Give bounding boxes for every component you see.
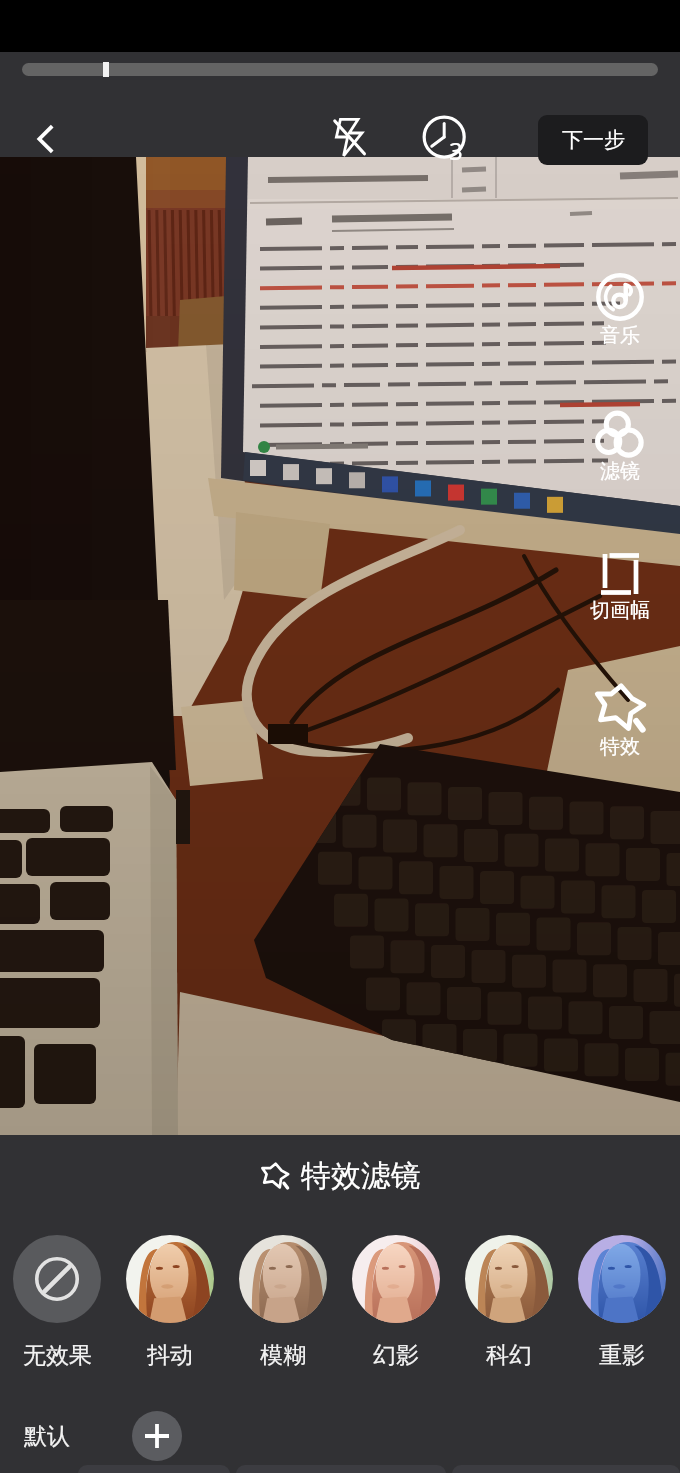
- staticText: 无效果: [23, 1341, 92, 1370]
- staticText: 3: [449, 134, 463, 167]
- staticText: 特效滤镜: [301, 1157, 421, 1195]
- staticText: 模糊: [260, 1341, 306, 1370]
- button[interactable]: Timer: [420, 116, 472, 168]
- staticText: 幻影: [373, 1341, 419, 1370]
- button[interactable]: 下一步: [538, 115, 648, 165]
- button[interactable]: Crop: [582, 543, 658, 638]
- staticText: 特效: [592, 734, 648, 759]
- button[interactable]: 无效果: [1, 1235, 113, 1370]
- button[interactable]: 重影: [566, 1235, 678, 1370]
- staticText: 切画幅: [582, 598, 658, 623]
- staticText: 下一步: [562, 127, 625, 153]
- button[interactable]: Flash off: [330, 117, 370, 157]
- staticText: 重影: [599, 1341, 645, 1370]
- button[interactable]: 模糊: [227, 1235, 339, 1370]
- button[interactable]: Effects: [592, 675, 648, 774]
- button[interactable]: 抖动: [114, 1235, 226, 1370]
- button[interactable]: Back: [20, 116, 66, 162]
- staticText: 抖动: [147, 1341, 193, 1370]
- staticText: 滤镜: [592, 459, 648, 484]
- staticText: 科幻: [486, 1341, 532, 1370]
- button[interactable]: 科幻: [453, 1235, 565, 1370]
- staticText: 音乐: [592, 323, 648, 348]
- button[interactable]: Filters: [592, 402, 648, 499]
- button[interactable]: 幻影: [340, 1235, 452, 1370]
- button[interactable]: Add filter: [132, 1411, 182, 1461]
- button[interactable]: Music: [592, 265, 648, 363]
- staticText: 默认: [24, 1422, 70, 1451]
